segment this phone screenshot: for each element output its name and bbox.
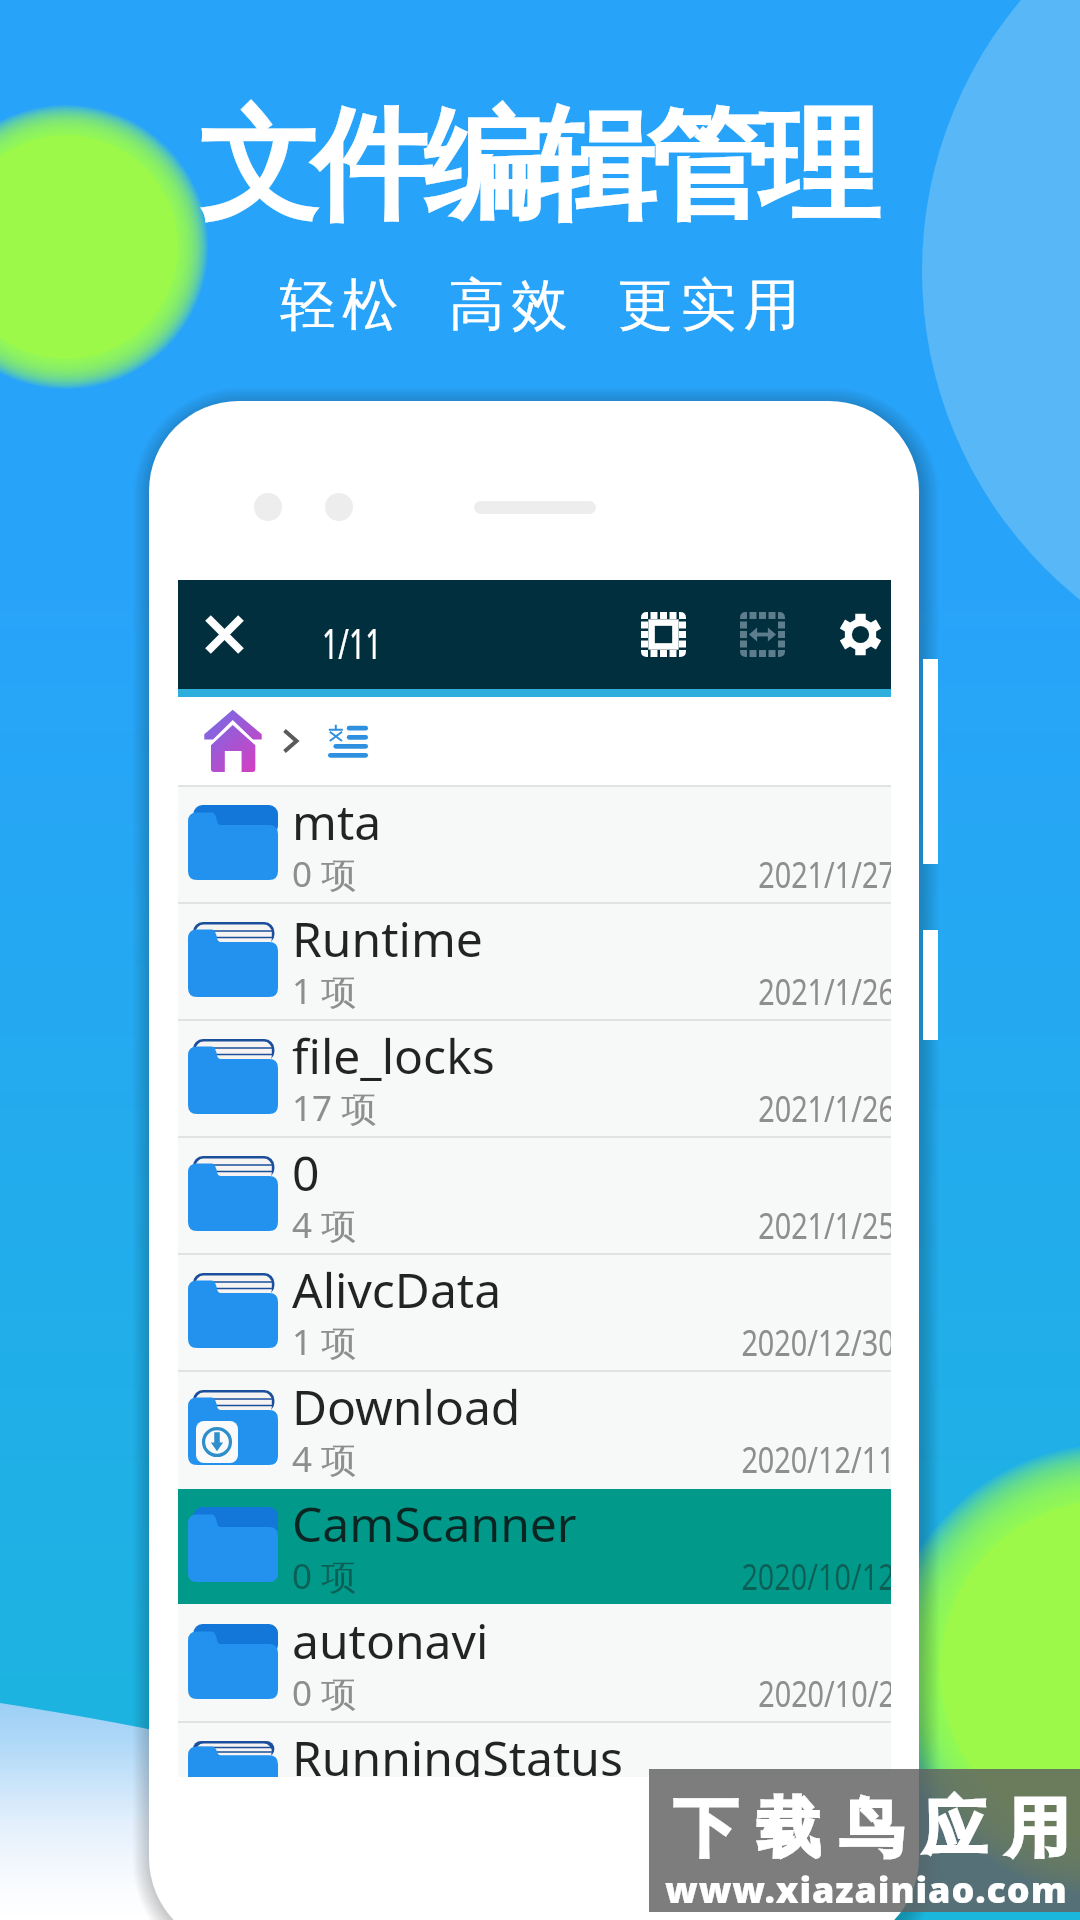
staticText: CamScanner [292,1491,577,1556]
staticText: autonavi [292,1608,489,1673]
staticText: 2021/1/25 [758,1201,891,1250]
button[interactable]: 0 [178,1138,891,1253]
button[interactable]: Download [178,1372,891,1487]
button[interactable]: mta [178,787,891,902]
staticText: 2021/1/26 [758,967,891,1016]
button[interactable]: autonavi [178,1606,891,1721]
staticText: 1 项 [292,1318,357,1366]
staticText: AlivcData [292,1257,502,1322]
staticText: 4 项 [292,1435,357,1483]
button[interactable] [178,697,891,785]
staticText: 1/11 [322,614,382,671]
button[interactable]: RunningStatus [178,1723,891,1777]
staticText: 文件编辑管理 [203,90,875,242]
button[interactable]: Close [178,580,270,689]
staticText: 0 项 [292,1669,357,1717]
staticText: RunningStatus [292,1725,624,1777]
staticText: www.xiazainiao.com [665,1865,1068,1914]
staticText: 轻松 高效 更实用 [279,264,807,340]
staticText: 2020/10/12 [741,1552,891,1601]
staticText: 2020/10/2 [758,1669,891,1718]
button[interactable]: Settings [811,580,910,689]
staticText: 1 项 [292,967,357,1015]
staticText: 0 项 [292,1552,357,1600]
staticText: 下载鸟应用 [664,1788,1079,1869]
staticText: 17 项 [292,1084,377,1132]
button[interactable]: Resize [713,580,812,689]
button[interactable]: file_locks [178,1021,891,1136]
staticText: 2021/1/26 [758,1084,891,1133]
staticText: 2021/1/27 [758,850,891,899]
button[interactable]: Select all [614,580,713,689]
staticText: file_locks [292,1023,495,1088]
staticText: Download [292,1374,521,1439]
button[interactable]: CamScanner [178,1489,891,1604]
staticText: 0 项 [292,850,357,898]
button[interactable]: Runtime [178,904,891,1019]
staticText: 2020/12/30 [741,1318,891,1367]
staticText: mta [292,789,382,854]
staticText: Runtime [292,906,483,971]
staticText: 2020/12/11 [741,1435,891,1484]
staticText: 4 项 [292,1201,357,1249]
staticText: 0 [292,1140,320,1205]
button[interactable]: AlivcData [178,1255,891,1370]
